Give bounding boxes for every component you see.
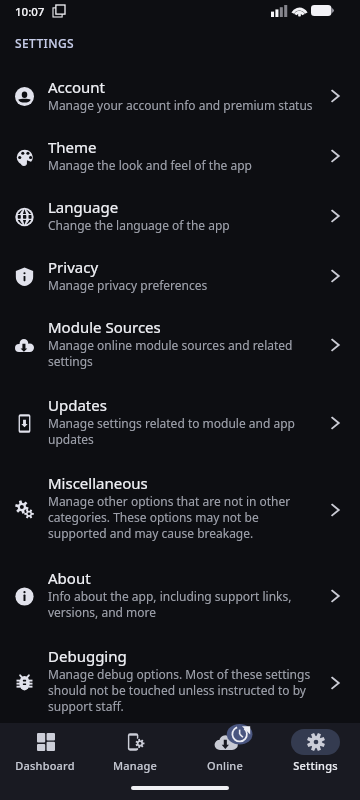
staticText: Settings (293, 758, 338, 773)
staticText: settings (48, 353, 93, 369)
other: Online (198, 722, 254, 762)
staticText: Language (48, 197, 119, 217)
button[interactable]: Debugging (0, 635, 360, 730)
staticText: support staff. (48, 698, 124, 714)
staticText: Miscellaneous (48, 473, 148, 493)
staticText: Manage debug options. Most of these sett… (48, 666, 311, 682)
staticText: 10:07 (15, 4, 45, 20)
staticText: Change the language of the app (48, 217, 230, 233)
button[interactable]: Language (0, 186, 360, 246)
staticText: supported and may cause breakage. (48, 525, 254, 541)
staticText: Manage the look and feel of the app (48, 157, 252, 173)
staticText: SETTINGS (15, 35, 75, 51)
staticText: Manage (113, 758, 157, 773)
button[interactable]: Module Sources (0, 306, 360, 384)
staticText: categories. These options may not be (48, 509, 259, 525)
button[interactable]: Dashboard (0, 723, 90, 773)
staticText: should not be touched unless instructed … (48, 682, 306, 698)
staticText: updates (48, 431, 94, 447)
staticText: Manage privacy preferences (48, 277, 208, 293)
staticText: Online (207, 758, 243, 773)
staticText: Theme (48, 137, 97, 157)
button[interactable]: Settings (270, 723, 360, 773)
staticText: Manage other options that are not in oth… (48, 493, 291, 509)
staticText: versions, and more (48, 604, 157, 620)
staticText: Account (48, 77, 106, 97)
button[interactable]: Updates (0, 384, 360, 462)
button[interactable]: Manage (90, 723, 180, 773)
button[interactable]: Privacy (0, 246, 360, 306)
button[interactable]: Miscellaneous (0, 462, 360, 557)
staticText: Dashboard (15, 758, 75, 773)
staticText: Updates (48, 395, 107, 415)
other: Manage (127, 733, 145, 751)
button[interactable]: About (0, 557, 360, 635)
staticText: Manage your account info and premium sta… (48, 97, 313, 113)
staticText: Debugging (48, 646, 127, 666)
staticText: About (48, 568, 91, 588)
staticText: Module Sources (48, 317, 161, 337)
other: Dashboard (37, 733, 55, 751)
button[interactable]: Theme (0, 126, 360, 186)
staticText: Manage online module sources and related (48, 337, 293, 353)
staticText: Privacy (48, 257, 99, 277)
staticText: Info about the app, including support li… (48, 588, 292, 604)
button[interactable]: Online (180, 723, 270, 773)
other: Settings (307, 733, 325, 751)
button[interactable]: Account (0, 66, 360, 126)
staticText: Manage settings related to module and ap… (48, 415, 295, 431)
